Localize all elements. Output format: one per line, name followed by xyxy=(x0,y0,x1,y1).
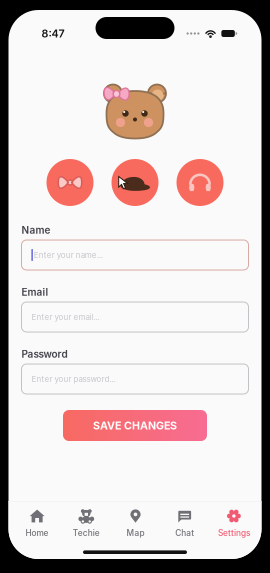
button[interactable]: Hats xyxy=(111,159,158,206)
button[interactable]: Enter your email... xyxy=(21,302,248,332)
button[interactable]: Techie xyxy=(62,507,111,539)
staticText: Map xyxy=(126,528,144,538)
staticText: SAVE CHANGES xyxy=(93,419,177,432)
button[interactable]: SAVE CHANGES xyxy=(63,410,207,441)
button[interactable]: Map xyxy=(111,507,160,539)
button[interactable]: Accessories xyxy=(46,159,93,206)
staticText: Enter your name... xyxy=(34,250,103,260)
button[interactable]: Enter your name... xyxy=(21,240,248,270)
staticText: Settings xyxy=(218,528,250,538)
button[interactable]: Enter your password... xyxy=(21,364,248,394)
button[interactable]: Home xyxy=(12,507,62,539)
staticText: Enter your email... xyxy=(31,312,99,322)
staticText: Chat xyxy=(175,528,194,538)
button[interactable]: Settings xyxy=(209,507,258,539)
button[interactable]: Chat xyxy=(160,507,209,539)
staticText: Techie xyxy=(73,528,100,538)
staticText: Name xyxy=(21,224,50,236)
staticText: Enter your password... xyxy=(31,374,115,384)
button[interactable]: Headphones xyxy=(176,159,223,206)
staticText: 8:47 xyxy=(41,27,64,40)
staticText: Email xyxy=(21,286,48,298)
staticText: Home xyxy=(26,528,49,538)
staticText: Password xyxy=(21,348,67,360)
